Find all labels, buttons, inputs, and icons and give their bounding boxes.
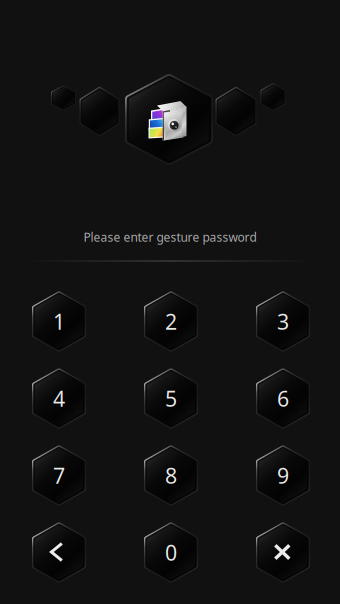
staticText: 5 xyxy=(165,384,177,413)
staticText: 9 xyxy=(277,461,289,490)
staticText: 2 xyxy=(165,307,177,336)
button[interactable]: 7 xyxy=(0,0,340,604)
button[interactable]: 9 xyxy=(0,0,340,604)
staticText: 3 xyxy=(277,307,289,336)
button[interactable]: 5 xyxy=(0,0,340,604)
button[interactable]: 6 xyxy=(0,0,340,604)
staticText: 8 xyxy=(165,461,177,490)
button[interactable]: 3 xyxy=(0,0,340,604)
staticText: Please enter gesture password xyxy=(83,229,256,245)
button[interactable]: Close xyxy=(0,0,340,604)
button[interactable]: 1 xyxy=(0,0,340,604)
button[interactable]: 0 xyxy=(0,0,340,604)
button[interactable]: Backspace xyxy=(0,0,340,604)
button[interactable]: 4 xyxy=(0,0,340,604)
staticText: 1 xyxy=(53,307,65,336)
staticText: 7 xyxy=(53,461,65,490)
staticText: 6 xyxy=(277,384,289,413)
button[interactable]: 8 xyxy=(0,0,340,604)
button[interactable]: 2 xyxy=(0,0,340,604)
staticText: 0 xyxy=(165,538,177,567)
staticText: 4 xyxy=(53,384,65,413)
